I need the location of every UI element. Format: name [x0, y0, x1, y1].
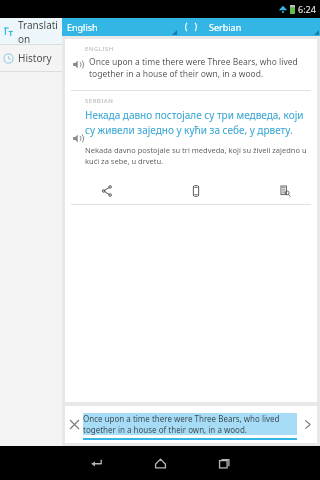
staticText: Nekada davno postojale su tri medveda, k… — [85, 145, 309, 166]
staticText: English — [67, 21, 98, 33]
staticText: 6:24 — [298, 3, 316, 15]
button[interactable]: Share — [95, 179, 119, 203]
staticText: Serbian — [209, 21, 242, 33]
staticText: Once upon a time there were Three Bears,… — [83, 413, 297, 435]
button[interactable]: Listen — [69, 56, 85, 72]
button[interactable]: Recents — [209, 448, 239, 478]
staticText: Translation — [18, 18, 62, 44]
button[interactable]: Dictionary — [273, 179, 297, 203]
button[interactable]: Swap languages — [178, 18, 204, 36]
button[interactable]: English — [62, 18, 178, 36]
button[interactable]: Home — [145, 448, 175, 478]
button[interactable]: Copy — [184, 179, 208, 203]
button[interactable]: Clear — [65, 406, 83, 443]
button[interactable]: History — [0, 45, 62, 71]
button[interactable]: Translate — [297, 406, 317, 443]
staticText: SERBIAN — [85, 97, 114, 105]
button[interactable]: Serbian — [204, 18, 320, 36]
staticText: History — [18, 51, 52, 65]
button[interactable]: Back — [81, 448, 111, 478]
staticText: Once upon a time there were Three Bears,… — [89, 56, 309, 80]
staticText: Некада давно постојале су три медведа, к… — [85, 108, 309, 137]
button[interactable]: Listen — [69, 130, 85, 146]
button[interactable]: Translation — [0, 18, 62, 44]
staticText: ENGLISH — [85, 45, 114, 53]
